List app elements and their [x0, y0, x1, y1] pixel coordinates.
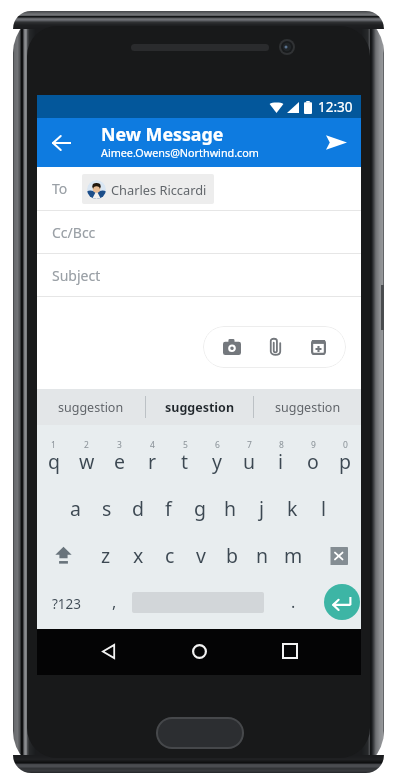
button[interactable]: 3 — [103, 425, 136, 477]
button[interactable]: b — [216, 524, 247, 571]
staticText: l — [321, 495, 327, 522]
staticText: Subject — [52, 266, 101, 285]
button[interactable]: 9 — [297, 425, 329, 477]
staticText: x — [133, 542, 144, 569]
staticText: m — [284, 542, 303, 569]
button[interactable]: To — [37, 167, 361, 210]
staticText: c — [165, 542, 175, 569]
staticText: f — [165, 495, 172, 522]
button[interactable]: 5 — [169, 425, 201, 477]
staticText: suggestion — [58, 399, 124, 416]
button[interactable]: Insert image — [297, 327, 339, 367]
button[interactable]: m — [278, 524, 309, 571]
staticText: t — [181, 448, 189, 475]
staticText: suggestion — [165, 399, 235, 416]
button[interactable]: x — [122, 524, 154, 571]
staticText: b — [226, 542, 238, 569]
button[interactable]: d — [122, 477, 153, 524]
button[interactable]: 1 — [37, 425, 70, 477]
staticText: 3 — [117, 439, 122, 451]
staticText: d — [132, 495, 144, 522]
staticText: To — [52, 179, 68, 198]
staticText: a — [70, 495, 81, 522]
button[interactable]: 7 — [233, 425, 265, 477]
staticText: . — [291, 591, 296, 613]
button[interactable]: Send — [312, 118, 361, 167]
button[interactable]: g — [184, 477, 215, 524]
button[interactable]: 4 — [136, 425, 169, 477]
staticText: h — [224, 495, 237, 522]
staticText: r — [148, 448, 157, 475]
staticText: k — [287, 495, 298, 522]
button[interactable]: f — [153, 477, 184, 524]
button[interactable]: Space — [132, 571, 264, 629]
button[interactable]: Back — [85, 629, 131, 675]
button[interactable]: Take photo — [211, 327, 253, 367]
staticText: q — [48, 448, 60, 475]
staticText: 6 — [215, 439, 220, 451]
staticText: n — [256, 542, 269, 569]
staticText: u — [243, 448, 256, 475]
button[interactable]: Shift — [37, 524, 90, 571]
staticText: s — [102, 495, 112, 522]
staticText: , — [112, 591, 117, 613]
staticText: i — [278, 448, 284, 475]
button[interactable]: 8 — [265, 425, 297, 477]
button[interactable]: suggestion — [254, 389, 361, 425]
staticText: New Message — [101, 122, 224, 146]
staticText: z — [101, 542, 111, 569]
staticText: 12:30 — [318, 98, 353, 116]
button[interactable]: ?123 — [37, 571, 97, 629]
button[interactable]: 6 — [201, 425, 233, 477]
staticText: 0 — [343, 439, 348, 451]
staticText: Aimee.Owens@Northwind.com — [101, 145, 259, 160]
button[interactable]: . — [264, 571, 322, 629]
staticText: j — [259, 495, 265, 522]
staticText: Cc/Bcc — [52, 223, 96, 242]
button[interactable]: Backspace — [309, 524, 361, 571]
button[interactable]: Back — [37, 118, 86, 167]
button[interactable]: v — [185, 524, 216, 571]
staticText: Charles Riccardi — [111, 181, 207, 198]
staticText: o — [307, 448, 319, 475]
button[interactable]: h — [215, 477, 246, 524]
button[interactable]: k — [277, 477, 308, 524]
button[interactable]: Cc/Bcc — [37, 211, 361, 253]
button[interactable]: c — [154, 524, 185, 571]
staticText: w — [79, 448, 95, 475]
staticText: 5 — [183, 439, 188, 451]
button[interactable]: , — [97, 571, 132, 629]
staticText: g — [194, 495, 206, 522]
staticText: 2 — [84, 439, 89, 451]
staticText: 1 — [51, 439, 56, 451]
staticText: y — [212, 448, 222, 475]
button[interactable]: j — [246, 477, 277, 524]
button[interactable]: Subject — [37, 254, 361, 296]
staticText: 8 — [279, 439, 284, 451]
button[interactable]: Enter — [322, 571, 361, 629]
button[interactable]: s — [91, 477, 122, 524]
button[interactable]: Home — [176, 629, 222, 675]
button[interactable]: l — [308, 477, 339, 524]
button[interactable]: 0 — [329, 425, 361, 477]
staticText: 9 — [311, 439, 316, 451]
staticText: p — [339, 448, 351, 475]
button[interactable]: 2 — [70, 425, 103, 477]
staticText: suggestion — [275, 399, 341, 416]
staticText: ?123 — [52, 595, 82, 613]
staticText: 4 — [150, 439, 155, 451]
staticText: e — [114, 448, 125, 475]
button[interactable]: Recent apps — [267, 629, 313, 675]
staticText: v — [196, 542, 206, 569]
staticText: 7 — [247, 439, 252, 451]
button[interactable]: suggestion — [37, 389, 145, 425]
button[interactable]: z — [90, 524, 122, 571]
button[interactable]: Attach file — [253, 327, 297, 367]
button[interactable]: a — [60, 477, 91, 524]
button[interactable]: suggestion — [146, 389, 253, 425]
button[interactable]: n — [247, 524, 278, 571]
